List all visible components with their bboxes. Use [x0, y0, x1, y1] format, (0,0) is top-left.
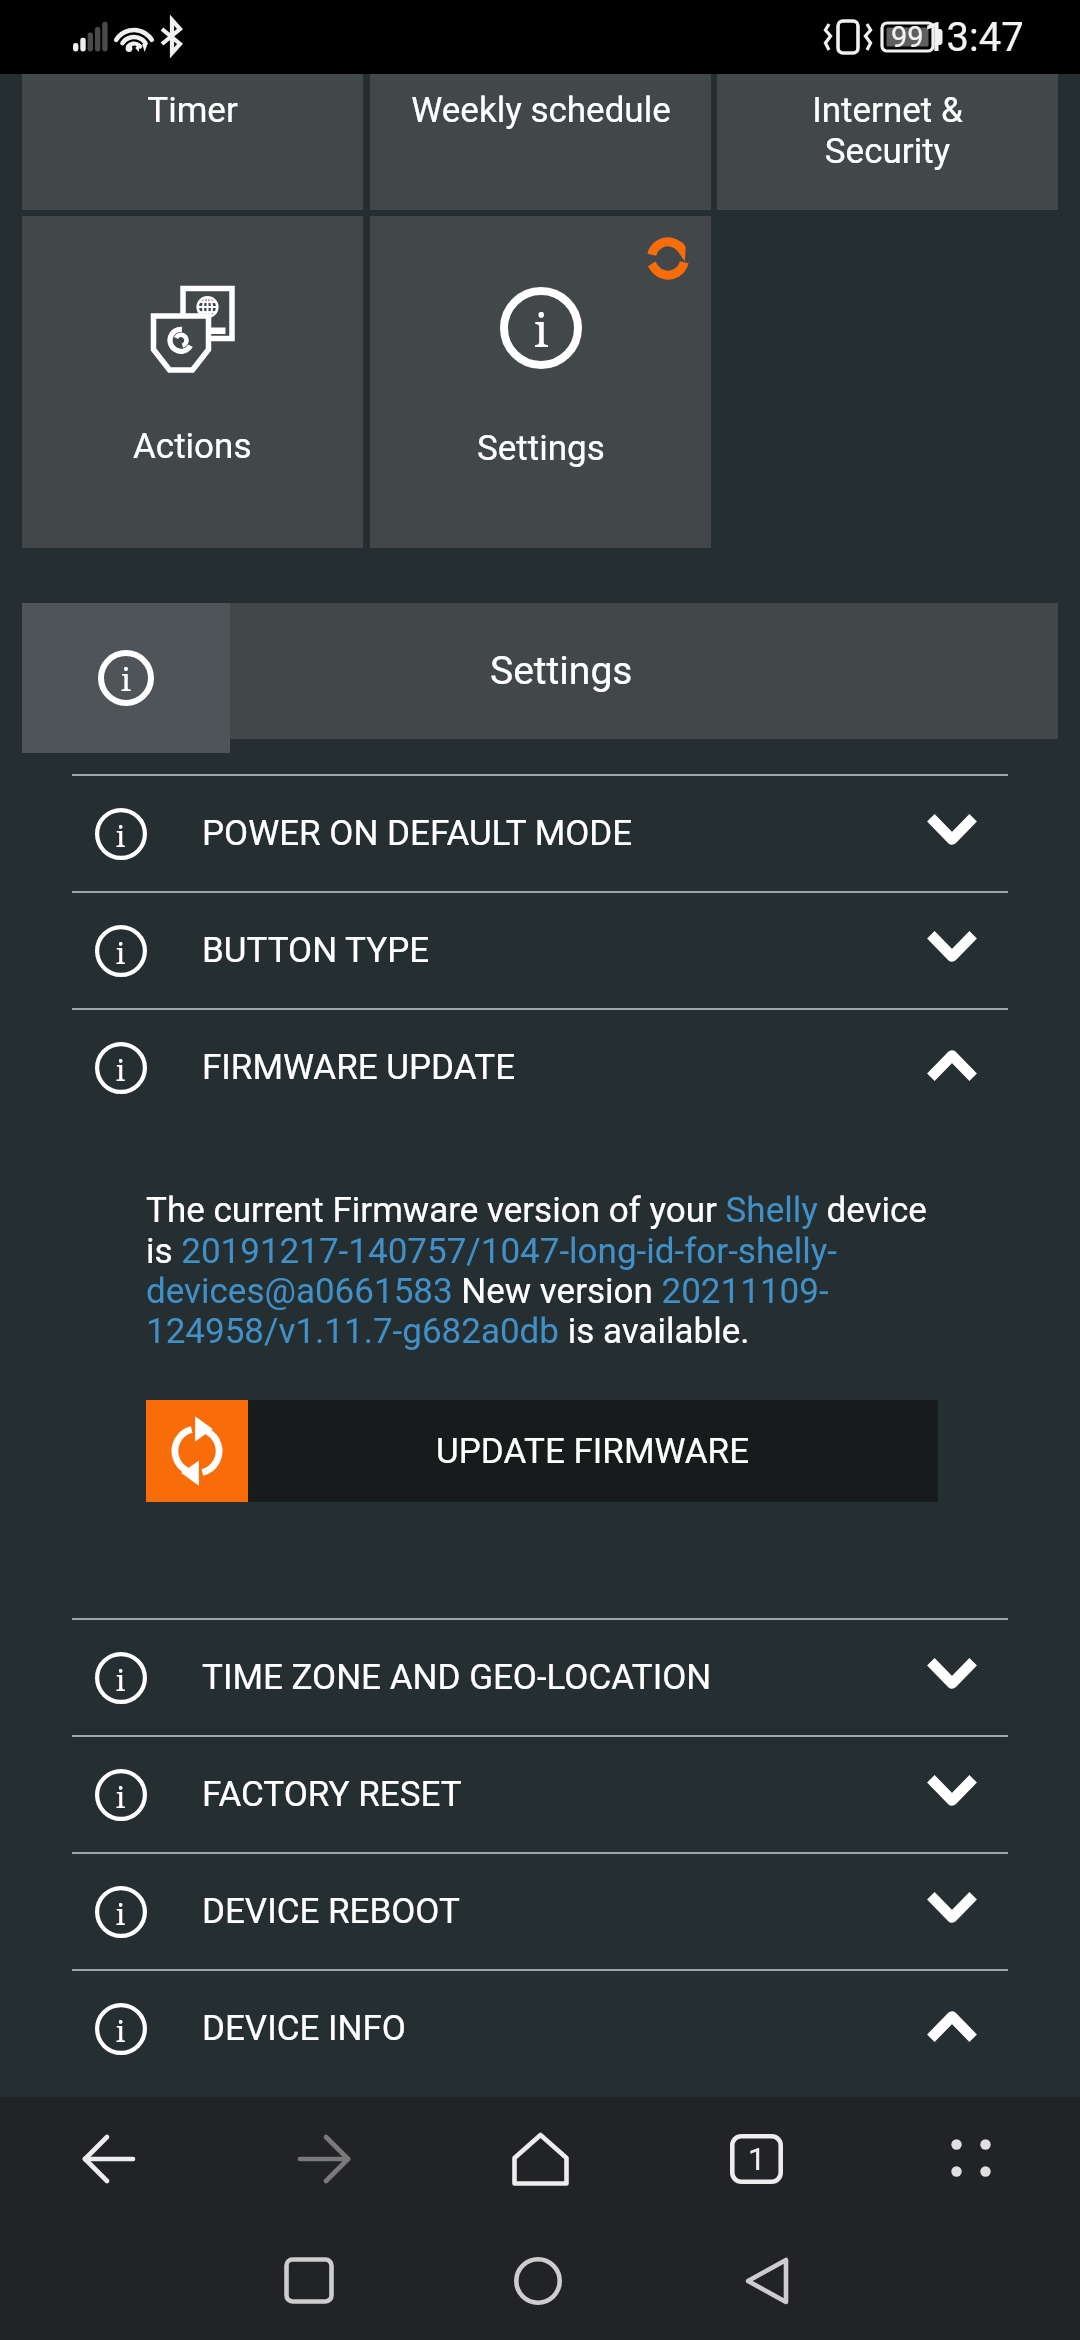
- staticText: i: [534, 299, 549, 360]
- button[interactable]: Forward: [219, 2097, 429, 2221]
- button[interactable]: i: [72, 1620, 1008, 1735]
- button[interactable]: Weekly schedule: [370, 74, 711, 210]
- staticText: i: [121, 658, 131, 700]
- button[interactable]: i: [72, 1854, 1008, 1969]
- staticText: Internet & Security: [812, 90, 963, 172]
- staticText: Settings: [477, 428, 605, 469]
- button[interactable]: i: [72, 776, 1008, 891]
- button[interactable]: i: [72, 1737, 1008, 1852]
- button[interactable]: Back: [4, 2097, 214, 2221]
- button[interactable]: Actions: [22, 216, 363, 548]
- staticText: FIRMWARE UPDATE: [202, 1047, 516, 1088]
- button[interactable]: Internet & Security: [717, 74, 1058, 210]
- staticText: i: [116, 1660, 126, 1699]
- button[interactable]: Device info tab: [22, 603, 230, 753]
- staticText: i: [116, 816, 126, 855]
- button[interactable]: i: [72, 1971, 1008, 2086]
- staticText: TIME ZONE AND GEO-LOCATION: [202, 1657, 712, 1698]
- staticText: Timer: [147, 90, 238, 131]
- staticText: BUTTON TYPE: [202, 930, 430, 971]
- staticText: i: [116, 933, 126, 972]
- staticText: Weekly schedule: [411, 90, 671, 131]
- button[interactable]: i: [370, 216, 711, 548]
- button[interactable]: Recent apps: [249, 2221, 369, 2340]
- staticText: 99: [891, 20, 924, 54]
- staticText: 1: [748, 2141, 766, 2177]
- staticText: i: [116, 1894, 126, 1933]
- button[interactable]: Home: [478, 2221, 598, 2340]
- staticText: Actions: [133, 426, 252, 467]
- button[interactable]: Tabs: [651, 2097, 861, 2221]
- staticText: i: [116, 1050, 126, 1089]
- staticText: DEVICE REBOOT: [202, 1891, 460, 1932]
- staticText: i: [116, 2011, 126, 2050]
- staticText: The current Firmware version of your She…: [146, 1190, 1006, 1351]
- staticText: DEVICE INFO: [202, 2008, 406, 2049]
- button[interactable]: UPDATE FIRMWARE: [146, 1400, 938, 1502]
- button[interactable]: i: [72, 893, 1008, 1008]
- button[interactable]: Back: [707, 2221, 827, 2340]
- staticText: POWER ON DEFAULT MODE: [202, 813, 633, 854]
- button[interactable]: Timer: [22, 74, 363, 210]
- button[interactable]: Home: [435, 2097, 645, 2221]
- staticText: i: [116, 1777, 126, 1816]
- button[interactable]: Settings: [22, 603, 1058, 739]
- staticText: UPDATE FIRMWARE: [436, 1431, 750, 1472]
- button[interactable]: i: [72, 1010, 1008, 1125]
- staticText: Settings: [490, 648, 633, 694]
- staticText: 13:47: [924, 14, 1024, 61]
- button[interactable]: More options: [866, 2097, 1076, 2221]
- staticText: FACTORY RESET: [202, 1774, 462, 1815]
